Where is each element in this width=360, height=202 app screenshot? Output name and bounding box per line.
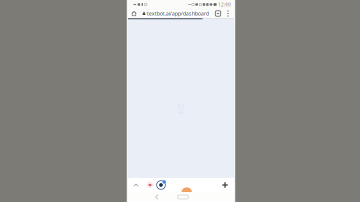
button[interactable]: More options [223, 9, 232, 18]
staticText: 12:49 [218, 1, 231, 8]
button[interactable]: Account [155, 178, 166, 192]
button[interactable]: Address bar [140, 9, 212, 18]
button[interactable]: Add [219, 178, 231, 192]
button[interactable]: Shortcut [145, 178, 155, 192]
button[interactable]: Expand [130, 178, 141, 192]
staticText: textbot.ai/app/dashboard [147, 10, 209, 17]
button[interactable]: Back [151, 192, 162, 202]
button[interactable]: Home [128, 9, 140, 18]
button[interactable]: Tabs [212, 9, 223, 18]
button[interactable]: Home [175, 192, 191, 202]
